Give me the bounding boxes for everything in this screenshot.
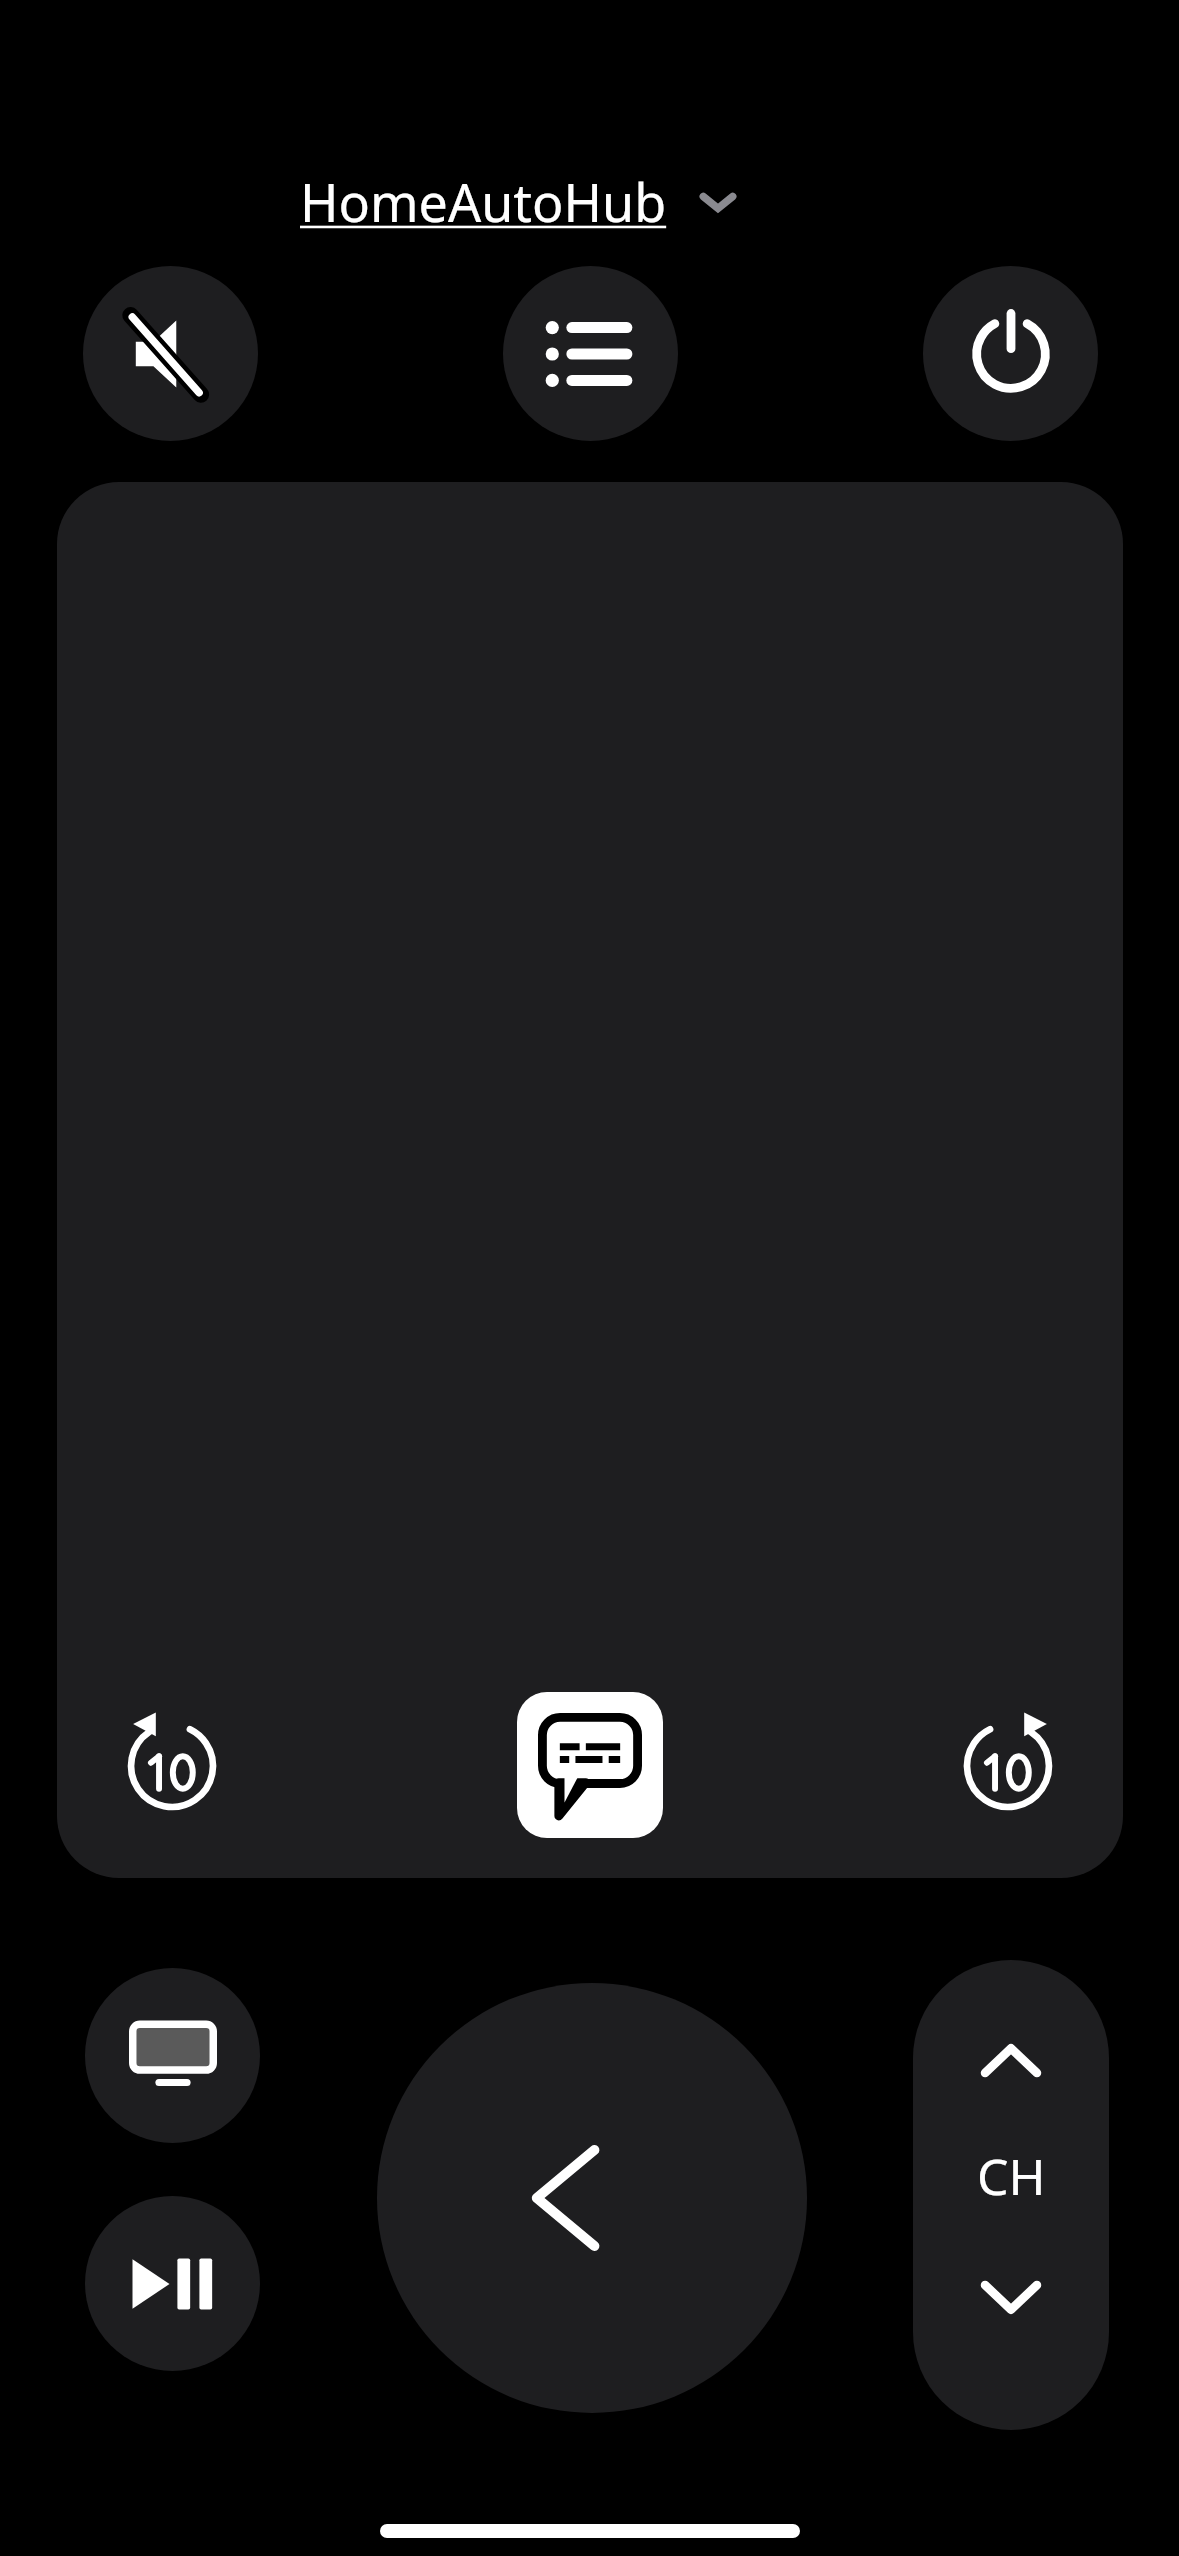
staticText: HomeAutoHub bbox=[300, 166, 667, 237]
button[interactable]: Channel list bbox=[503, 266, 678, 441]
staticText: CH bbox=[977, 2142, 1046, 2210]
button[interactable]: Touchpad bbox=[57, 482, 1123, 1878]
button[interactable]: Select device HomeAutoHub bbox=[300, 166, 741, 237]
button[interactable]: Channel up and down bbox=[913, 1960, 1109, 2430]
button[interactable]: Back bbox=[377, 1983, 807, 2413]
button[interactable]: TV input bbox=[85, 1968, 260, 2143]
button[interactable]: Power bbox=[923, 266, 1098, 441]
button[interactable]: Forward 10 seconds bbox=[933, 1691, 1083, 1841]
button[interactable]: Closed captions bbox=[517, 1692, 663, 1838]
button[interactable]: Mute bbox=[83, 266, 258, 441]
button[interactable]: Rewind 10 seconds bbox=[97, 1691, 247, 1841]
button[interactable]: Play or pause bbox=[85, 2196, 260, 2371]
